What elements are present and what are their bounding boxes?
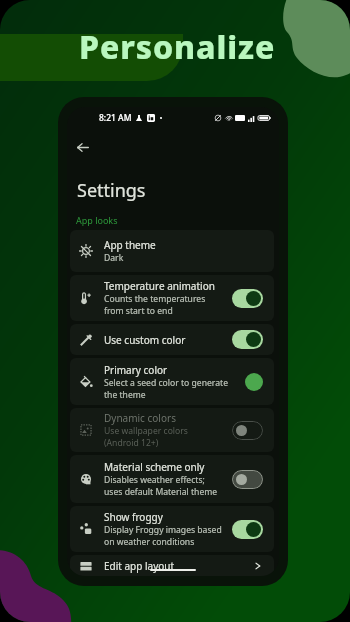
staticText: Dynamic colors — [104, 411, 176, 425]
staticText: Select a seed color to generate — [104, 377, 228, 389]
staticText: Edit app layout — [104, 559, 175, 573]
staticText: Counts the temperatures — [104, 293, 206, 305]
staticText: from start to end — [104, 305, 173, 317]
staticText: Disables weather effects; — [104, 474, 205, 486]
staticText: Material scheme only — [104, 460, 205, 474]
button[interactable]: Back — [71, 135, 95, 159]
button[interactable]: Toggle off — [232, 470, 263, 489]
button[interactable]: Toggle on — [232, 330, 263, 349]
staticText: App looks — [76, 214, 118, 226]
staticText: Show froggy — [104, 510, 163, 524]
button[interactable]: Use custom color — [70, 324, 274, 355]
button[interactable]: Toggle on — [232, 520, 263, 539]
staticText: Settings — [77, 178, 146, 203]
button[interactable]: Primary color — [245, 373, 263, 391]
staticText: Dark — [104, 252, 124, 264]
button[interactable]: Temperature animation — [70, 275, 274, 321]
staticText: Personalize — [79, 25, 276, 69]
button[interactable]: Dynamic colors — [70, 408, 274, 452]
staticText: (Android 12+) — [104, 437, 159, 449]
staticText: Use wallpaper colors — [104, 425, 188, 437]
button[interactable]: Show froggy — [70, 506, 274, 552]
staticText: Display Froggy images based — [104, 524, 222, 536]
button[interactable]: Primary color — [70, 358, 274, 405]
button[interactable]: Material scheme only — [70, 455, 274, 503]
button[interactable]: Edit app layout — [70, 555, 274, 576]
button[interactable]: Toggle on — [232, 289, 263, 308]
staticText: Primary color — [104, 363, 168, 377]
staticText: the theme — [104, 389, 146, 401]
staticText: uses default Material theme — [104, 486, 218, 498]
staticText: Use custom color — [104, 333, 186, 347]
staticText: 8:21 AM — [99, 112, 132, 124]
button[interactable]: Toggle off — [232, 421, 263, 440]
staticText: on weather conditions — [104, 536, 195, 548]
staticText: Temperature animation — [104, 279, 215, 293]
button[interactable]: App theme — [70, 230, 274, 272]
staticText: App theme — [104, 238, 156, 252]
